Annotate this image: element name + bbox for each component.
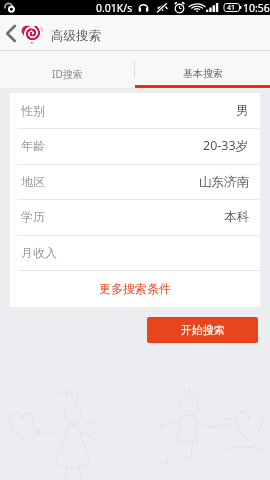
staticText: 年龄 — [21, 138, 45, 153]
staticText: ID搜索 — [52, 67, 83, 81]
staticText: 更多搜索条件 — [99, 281, 171, 296]
button[interactable]: Back — [0, 15, 21, 51]
button[interactable]: 学历 — [10, 199, 260, 234]
button[interactable]: 性别 — [10, 93, 260, 128]
button[interactable]: ID搜索 — [0, 51, 135, 88]
staticText: 月收入 — [21, 245, 57, 260]
staticText: 开始搜索 — [181, 323, 225, 337]
staticText: 0.01K/s — [96, 1, 133, 15]
button[interactable]: 月收入 — [10, 235, 260, 270]
staticText: 地区 — [21, 174, 45, 189]
button[interactable]: 开始搜索 — [147, 317, 258, 343]
staticText: 20-33岁 — [203, 137, 249, 154]
button[interactable]: 更多搜索条件 — [10, 270, 260, 307]
staticText: 本科 — [224, 209, 249, 225]
button[interactable]: 年龄 — [10, 128, 260, 163]
button[interactable]: 基本搜索 — [135, 51, 270, 88]
staticText: 高级搜索 — [51, 28, 101, 44]
staticText: 山东济南 — [199, 174, 249, 190]
staticText: 基本搜索 — [183, 67, 223, 80]
staticText: 10:56 — [243, 1, 270, 15]
button[interactable]: 地区 — [10, 164, 260, 199]
staticText: 男 — [236, 103, 249, 119]
staticText: 41 — [227, 3, 236, 12]
staticText: 性别 — [21, 103, 45, 118]
staticText: 学历 — [21, 209, 45, 224]
